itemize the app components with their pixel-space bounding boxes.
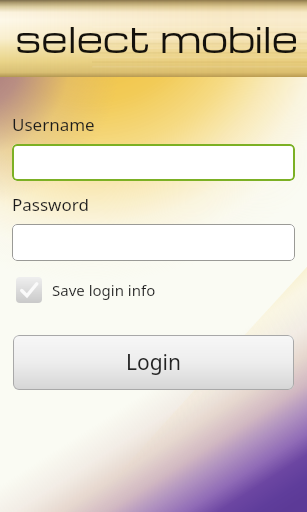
other: Save login info (16, 277, 42, 303)
staticText: Username (12, 113, 95, 136)
button[interactable] (12, 144, 295, 181)
button[interactable]: Login (13, 335, 294, 390)
button[interactable]: Save login info (16, 277, 156, 303)
staticText: select mobile (15, 14, 299, 62)
staticText: Save login info (52, 280, 156, 300)
staticText: Login (126, 348, 182, 377)
button[interactable] (12, 224, 295, 261)
staticText: Password (12, 193, 89, 216)
